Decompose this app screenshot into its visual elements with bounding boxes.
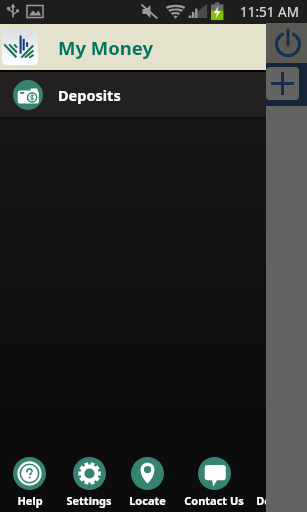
staticText: Help: [17, 493, 43, 508]
staticText: Deposits: [58, 85, 121, 105]
staticText: My Money: [58, 35, 154, 60]
button[interactable]: Settings: [59, 450, 119, 512]
button[interactable]: Contact Us: [175, 450, 253, 512]
staticText: 11:51 AM: [240, 3, 299, 21]
button[interactable]: Locate: [119, 450, 175, 512]
button[interactable]: Help: [0, 450, 59, 512]
button[interactable]: Deposits: [253, 450, 307, 512]
staticText: Settings: [66, 493, 112, 508]
button[interactable]: Add: [266, 67, 299, 100]
button[interactable]: Power: [266, 23, 307, 63]
button[interactable]: App logo: [2, 29, 38, 65]
staticText: Locate: [129, 493, 166, 508]
staticText: Contact Us: [184, 493, 244, 508]
staticText: Deposits: [256, 493, 304, 508]
button[interactable]: Deposits: [0, 72, 307, 117]
